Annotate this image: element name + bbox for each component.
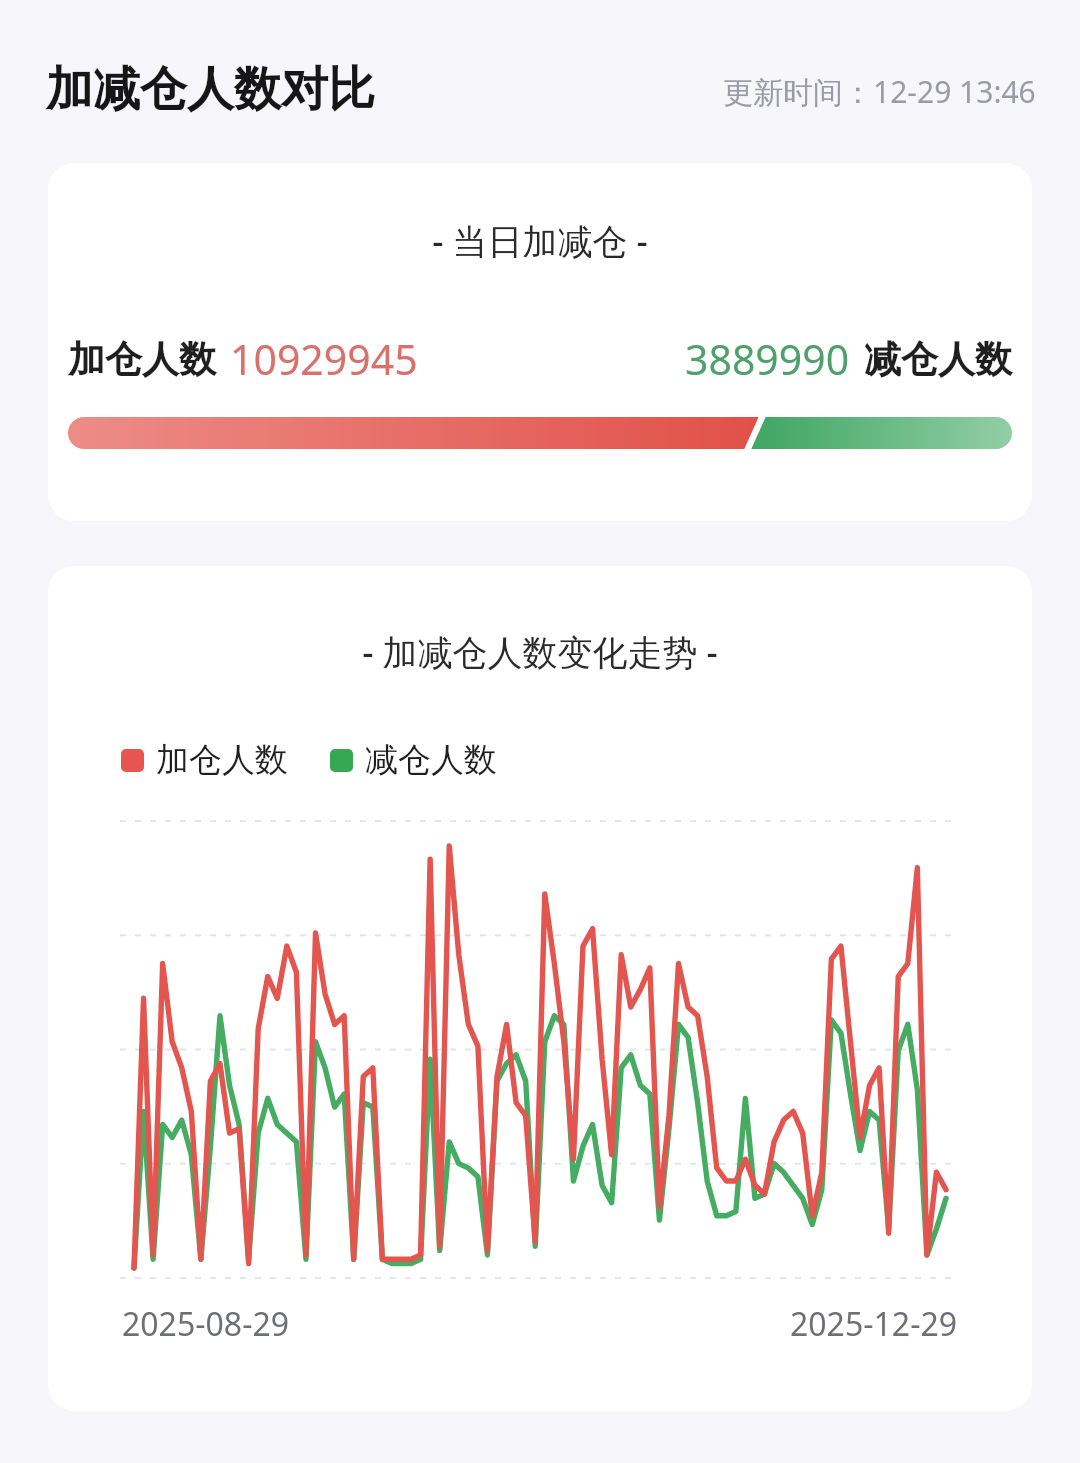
staticText: 加仓人数: [156, 739, 288, 781]
staticText: 减仓人数: [864, 336, 1012, 383]
staticText: - 当日加减仓 -: [48, 217, 1032, 265]
staticText: 减仓人数: [365, 739, 497, 781]
staticText: 10929945: [230, 331, 418, 387]
button[interactable]: - 当日加减仓 -: [48, 163, 1032, 521]
staticText: 3889990: [685, 331, 850, 387]
staticText: 2025-08-29: [122, 1302, 290, 1346]
staticText: 更新时间：12-29 13:46: [723, 71, 1036, 112]
button[interactable]: - 加减仓人数变化走势 -: [48, 566, 1032, 1411]
staticText: 加仓人数: [68, 336, 216, 383]
staticText: - 加减仓人数变化走势 -: [48, 628, 1032, 676]
staticText: 加减仓人数对比: [46, 60, 375, 119]
staticText: 2025-12-29: [790, 1302, 958, 1346]
